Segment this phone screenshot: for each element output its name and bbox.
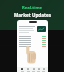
button[interactable]: Market chart — [37, 26, 46, 32]
button[interactable] — [19, 40, 46, 41]
staticText: Market Updates — [14, 12, 51, 18]
button[interactable]: Tab 4 — [36, 67, 41, 72]
button[interactable]: Search — [17, 20, 48, 72]
button[interactable] — [19, 46, 46, 47]
button[interactable]: Search — [29, 21, 37, 23]
other: Hand holding phone — [25, 45, 37, 65]
button[interactable] — [19, 36, 46, 37]
button[interactable] — [19, 42, 46, 43]
button[interactable] — [19, 38, 46, 39]
button[interactable]: Tab 5 — [41, 67, 46, 72]
staticText: Real-time — [22, 5, 42, 11]
button[interactable]: Tab 2 — [25, 67, 31, 72]
button[interactable]: Tab 1 — [19, 67, 25, 72]
button[interactable]: Tab 3 — [31, 67, 36, 72]
button[interactable] — [19, 44, 46, 45]
